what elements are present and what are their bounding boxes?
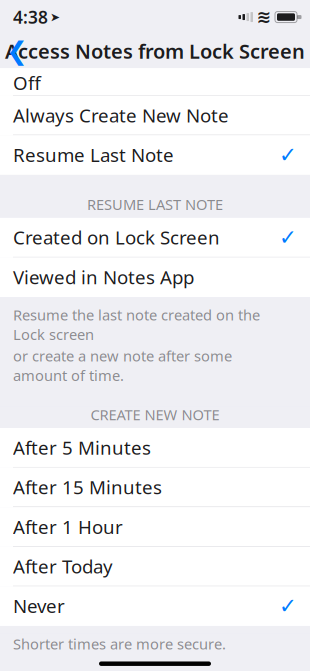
button[interactable]: Back (0, 35, 34, 67)
staticText: ➤ (50, 10, 60, 24)
staticText: Resume the last note created on the Lock… (13, 305, 260, 344)
button[interactable]: After 15 Minutes (0, 468, 310, 507)
button[interactable]: Created on Lock Screen (0, 218, 310, 257)
staticText: ≋ (256, 7, 271, 27)
staticText: After 5 Minutes (13, 435, 151, 460)
staticText: ✓ (279, 143, 297, 167)
staticText: ✓ (279, 225, 297, 249)
staticText: 4:38 (13, 5, 48, 28)
staticText: ✓ (279, 594, 297, 618)
staticText: Viewed in Notes App (13, 265, 194, 289)
button[interactable]: Never (0, 586, 310, 626)
staticText: Always Create New Note (13, 103, 229, 128)
button[interactable]: Viewed in Notes App (0, 257, 310, 297)
button[interactable]: After 1 Hour (0, 507, 310, 547)
button[interactable]: Resume Last Note (0, 135, 310, 175)
staticText: Off (13, 70, 41, 95)
button[interactable]: After 5 Minutes (0, 428, 310, 468)
staticText: Access Notes from Lock Screen (5, 38, 305, 64)
staticText: After 15 Minutes (13, 475, 162, 499)
button[interactable]: After Today (0, 547, 310, 586)
staticText: Created on Lock Screen (13, 225, 220, 250)
staticText: Shorter times are more secure. (13, 634, 226, 653)
staticText: After Today (13, 554, 113, 579)
staticText: ❮ (6, 37, 27, 65)
staticText: or create a new note after some amount o… (13, 346, 232, 385)
staticText: CREATE NEW NOTE (90, 405, 219, 424)
staticText: Never (13, 593, 65, 618)
button[interactable]: Always Create New Note (0, 96, 310, 135)
staticText: Resume Last Note (13, 142, 174, 167)
staticText: RESUME LAST NOTE (87, 195, 223, 214)
staticText: After 1 Hour (13, 514, 123, 539)
